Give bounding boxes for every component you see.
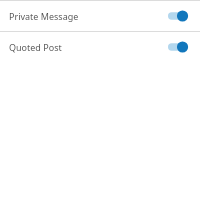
staticText: Quoted Post <box>9 41 62 53</box>
button[interactable]: Toggle on <box>168 40 190 54</box>
button[interactable]: Quoted Post <box>0 32 200 62</box>
button[interactable]: Toggle on <box>168 9 190 23</box>
button[interactable]: Private Message <box>0 1 200 31</box>
staticText: Private Message <box>9 10 79 22</box>
